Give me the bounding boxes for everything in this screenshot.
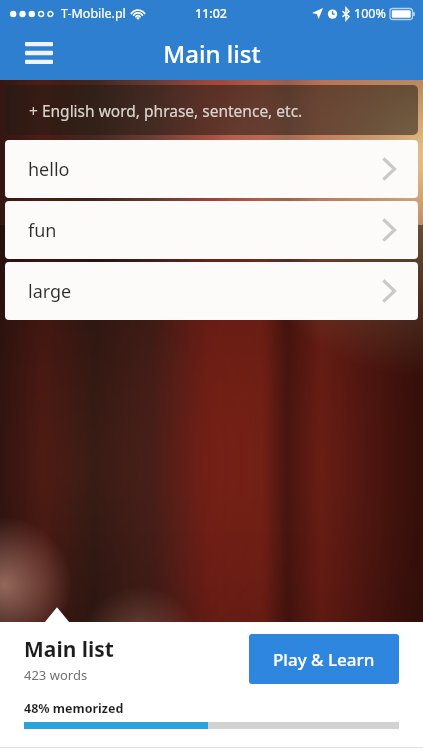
staticText: 100% [354, 5, 386, 22]
button[interactable]: large [5, 262, 418, 320]
staticText: fun [28, 218, 57, 243]
button[interactable]: hello [5, 140, 418, 198]
staticText: Play & Learn [273, 648, 375, 671]
staticText: 423 words [24, 666, 88, 684]
button[interactable]: Play & Learn [249, 634, 399, 684]
staticText: 11:02 [195, 5, 228, 22]
button[interactable]: fun [5, 201, 418, 259]
staticText: Main list [163, 37, 261, 70]
staticText: + English word, phrase, sentence, etc. [29, 100, 303, 121]
button[interactable]: + English word, phrase, sentence, etc. [5, 85, 418, 135]
staticText: Main list [24, 635, 114, 664]
staticText: hello [28, 157, 70, 182]
staticText: 48% memorized [24, 700, 124, 717]
staticText: large [28, 279, 72, 304]
staticText: T-Mobile.pl [61, 5, 126, 22]
button[interactable]: Menu [14, 28, 64, 78]
